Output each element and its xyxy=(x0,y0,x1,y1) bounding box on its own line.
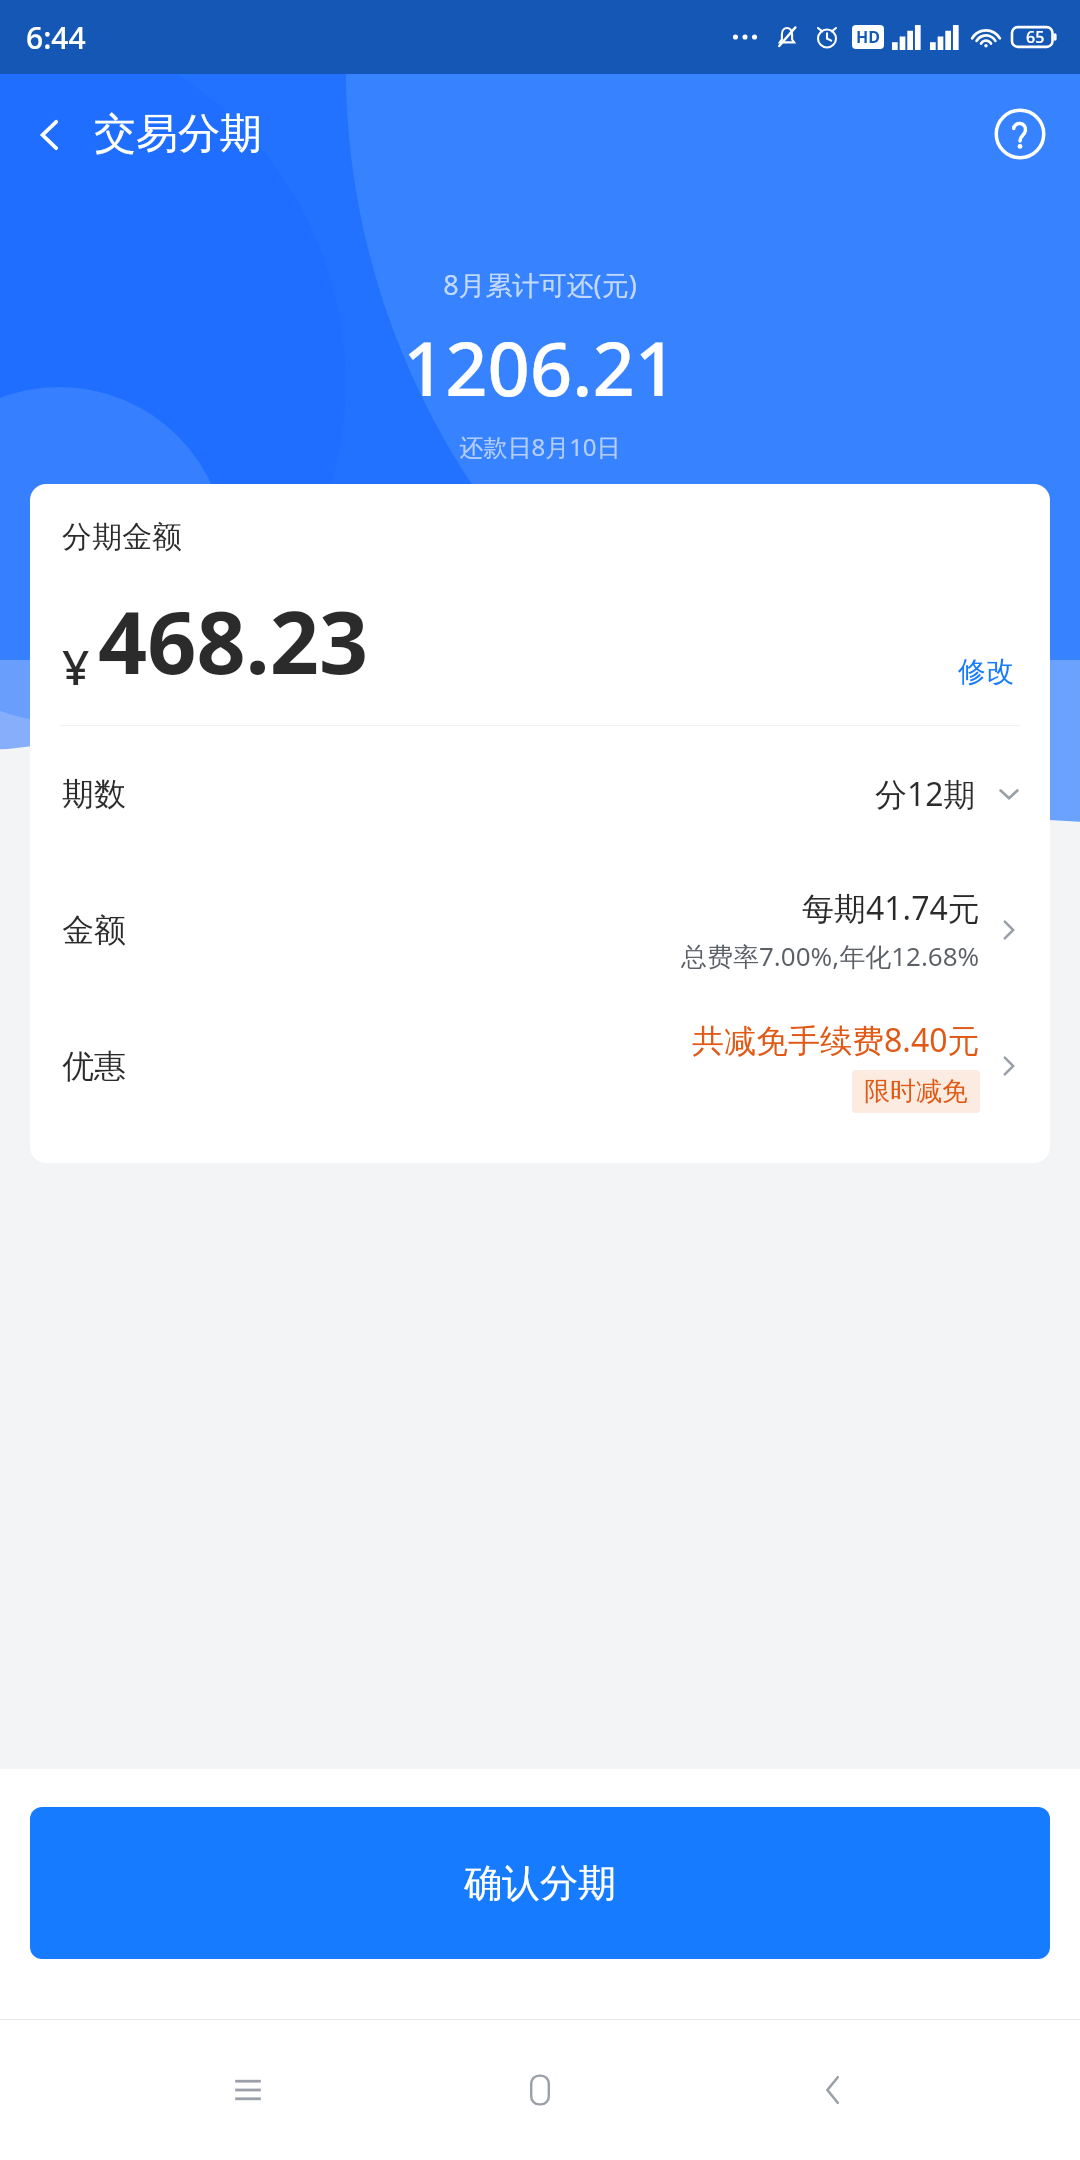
staticText: 65 xyxy=(1026,26,1045,48)
staticText: 交易分期 xyxy=(94,108,262,161)
staticText: 共减免手续费8.40元 xyxy=(692,1018,980,1062)
staticText: 1206.21 xyxy=(0,317,1080,418)
button[interactable]: Back xyxy=(788,2045,878,2135)
staticText: 限时减免 xyxy=(864,1075,968,1108)
button[interactable]: 修改 xyxy=(952,644,1020,699)
staticText: 6:44 xyxy=(26,17,86,58)
button[interactable]: Help xyxy=(988,102,1052,166)
staticText: HD xyxy=(856,26,880,48)
staticText: 8月累计可还(元) xyxy=(0,266,1080,303)
staticText: 金额 xyxy=(62,910,126,950)
button[interactable]: Recents xyxy=(203,2045,293,2135)
staticText: 分12期 xyxy=(875,772,976,816)
button[interactable]: 确认分期 xyxy=(30,1807,1050,1959)
staticText: 修改 xyxy=(958,654,1014,689)
staticText: 期数 xyxy=(62,774,126,814)
staticText: ¥ xyxy=(62,634,90,699)
staticText: 还款日8月10日 xyxy=(0,430,1080,463)
staticText: 确认分期 xyxy=(464,1859,616,1907)
staticText: 468.23 xyxy=(98,582,369,699)
staticText: 优惠 xyxy=(62,1046,126,1086)
button[interactable]: 期数 xyxy=(30,726,1050,862)
button[interactable]: 优惠 xyxy=(30,998,1050,1141)
button[interactable]: Home xyxy=(495,2045,585,2135)
staticText: 总费率7.00%,年化12.68% xyxy=(681,938,980,974)
staticText: 每期41.74元 xyxy=(802,886,980,930)
staticText: 分期金额 xyxy=(62,518,182,556)
button[interactable]: 交易分期 xyxy=(0,100,282,169)
button[interactable]: 金额 xyxy=(30,862,1050,998)
